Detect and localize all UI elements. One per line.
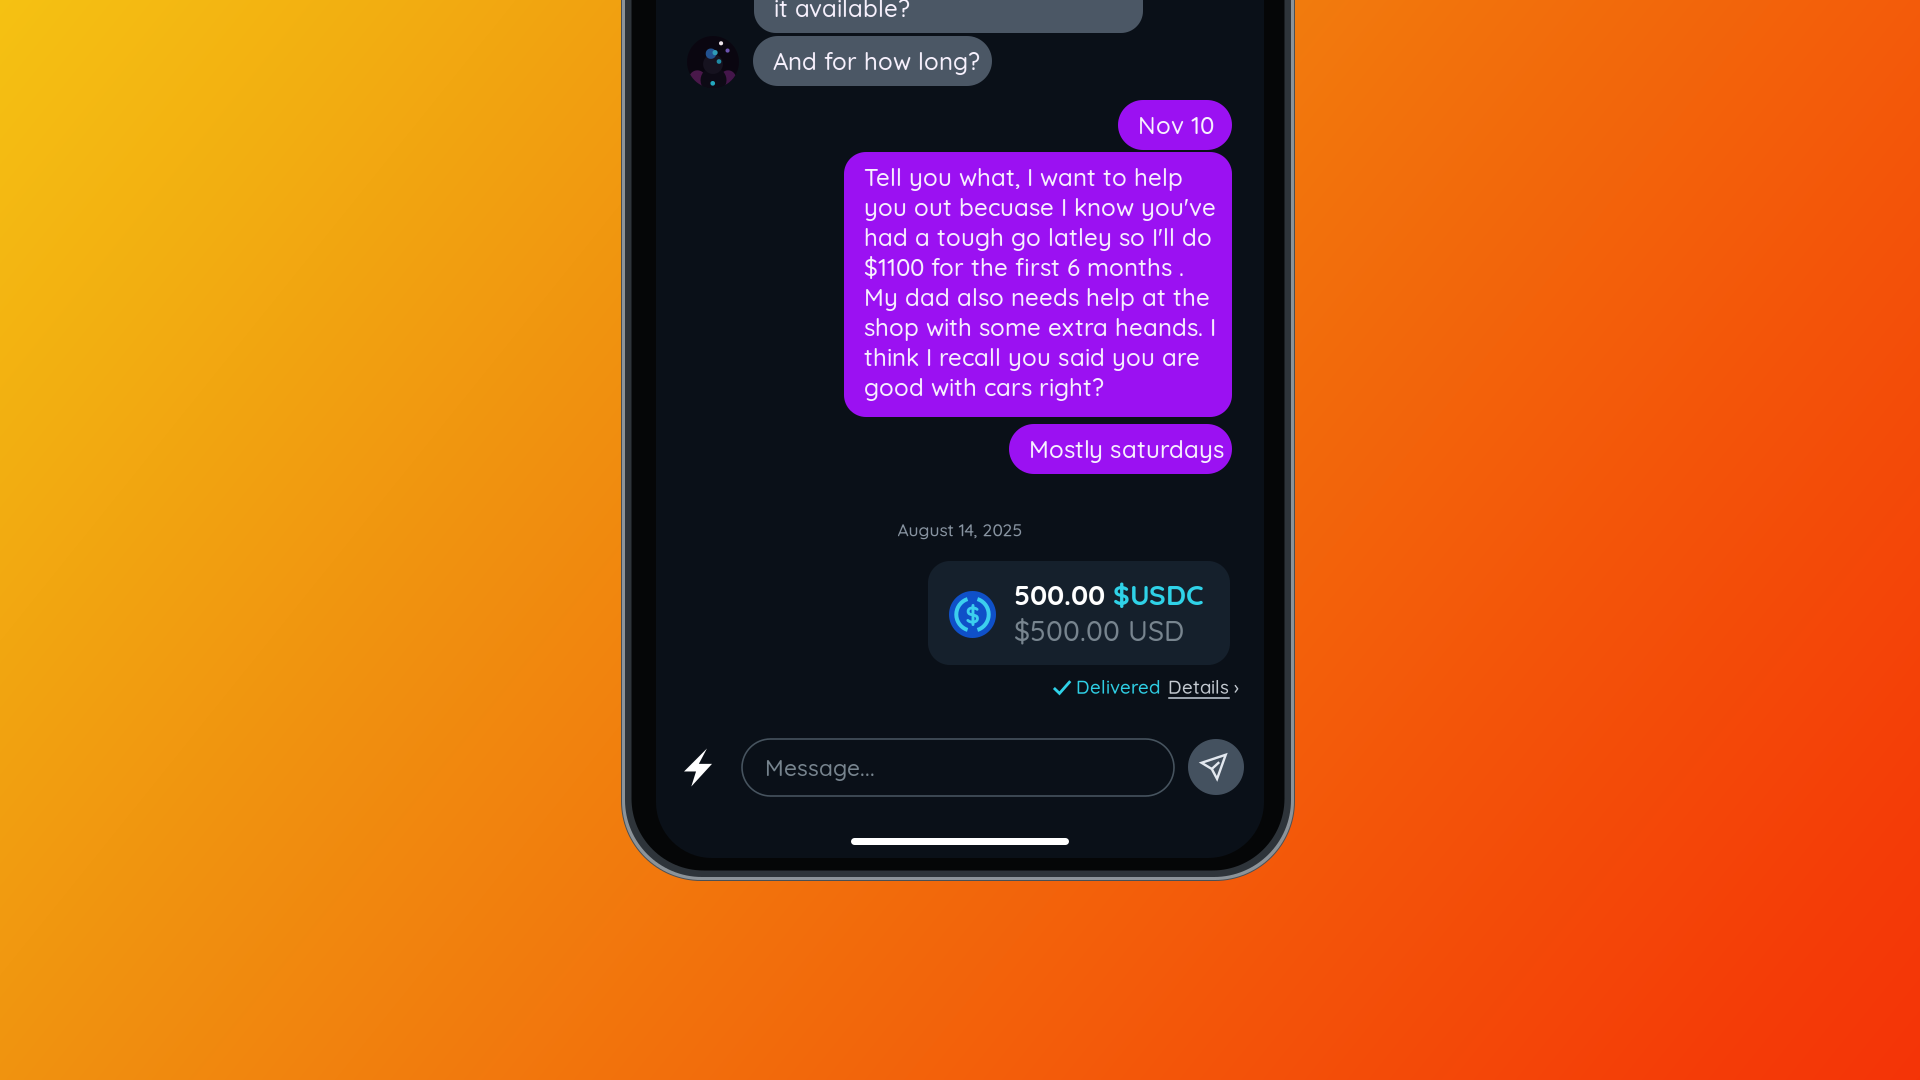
staticText: $500.00 USD [1014, 613, 1184, 648]
staticText: Tell you what, I want to help you out be… [864, 162, 1216, 402]
staticText: August 14, 2025 [897, 519, 1022, 541]
staticText: Nov 10 [1138, 110, 1214, 140]
staticText: And for how long? [773, 46, 980, 76]
staticText: Details › [1168, 675, 1239, 698]
button[interactable]: Message... [742, 739, 1174, 796]
staticText: 500.00 [1014, 577, 1113, 612]
staticText: Hey, was wondering if you still had the … [774, 0, 1124, 23]
button[interactable]: Quick actions [673, 739, 723, 796]
button[interactable]: Send [1188, 739, 1244, 795]
button[interactable]: Details › [1168, 675, 1240, 701]
staticText: Delivered [1076, 675, 1160, 698]
staticText: $USDC [1113, 577, 1204, 612]
staticText: Mostly saturdays [1029, 434, 1224, 464]
staticText: $ [965, 599, 979, 629]
staticText: Message... [765, 753, 875, 782]
